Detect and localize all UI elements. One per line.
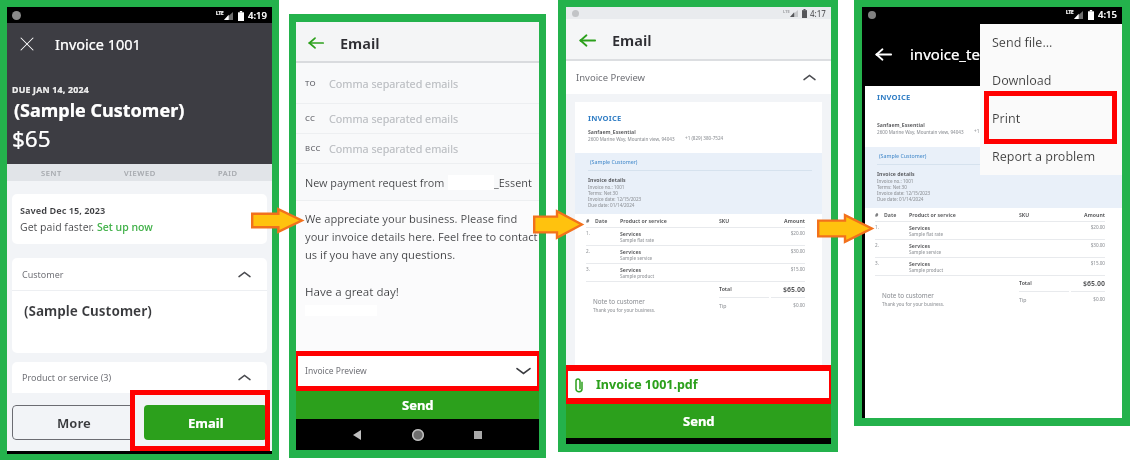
staticText: Total bbox=[1019, 279, 1071, 286]
staticText: 1. bbox=[875, 224, 884, 230]
staticText: Sanfaem_Essential bbox=[588, 128, 636, 135]
staticText: LTE bbox=[216, 10, 224, 16]
staticText: Invoice details bbox=[877, 170, 915, 177]
button[interactable]: More bbox=[12, 405, 135, 440]
staticText: We appreciate your business. Please find… bbox=[305, 211, 539, 263]
button[interactable]: SENT bbox=[7, 164, 96, 181]
staticText: Send bbox=[683, 412, 715, 430]
staticText: 4:17 bbox=[810, 8, 826, 19]
staticText: Send file... bbox=[992, 34, 1053, 51]
staticText: Due date: 01/14/2024 bbox=[588, 202, 635, 208]
staticText: Email bbox=[340, 33, 380, 53]
staticText: (Sample Customer) bbox=[590, 158, 638, 165]
staticText: Product or service bbox=[909, 211, 1019, 218]
staticText: New payment request from bbox=[305, 175, 448, 190]
staticText: Services bbox=[909, 224, 931, 231]
button[interactable]: Send file... bbox=[980, 24, 1122, 61]
staticText: CC bbox=[305, 113, 316, 124]
staticText: Download bbox=[992, 72, 1052, 89]
staticText: Note to customer bbox=[593, 297, 645, 306]
button[interactable]: Send bbox=[296, 391, 539, 419]
staticText: More bbox=[57, 414, 91, 432]
staticText: Have a great day! bbox=[305, 284, 399, 300]
button[interactable]: Invoice Preview bbox=[298, 356, 537, 386]
staticText: Services bbox=[620, 248, 642, 255]
button[interactable]: VIEWED bbox=[96, 164, 184, 181]
staticText: TO bbox=[305, 78, 316, 89]
staticText: PAID bbox=[218, 168, 238, 178]
button[interactable]: Customer bbox=[12, 258, 267, 290]
staticText: Invoice Preview bbox=[576, 71, 646, 84]
button[interactable]: Report a problem bbox=[980, 137, 1122, 175]
staticText: INVOICE bbox=[877, 92, 911, 102]
staticText: Comma separated emails bbox=[329, 76, 459, 91]
staticText: Print bbox=[992, 110, 1021, 127]
staticText: Invoice date: 12/15/2023 bbox=[877, 190, 931, 196]
staticText: Send bbox=[402, 396, 434, 414]
button[interactable]: Recents bbox=[467, 424, 489, 446]
staticText: INVOICE bbox=[588, 113, 622, 123]
staticText: (Sample Customer) bbox=[24, 302, 152, 320]
button[interactable]: Back bbox=[305, 32, 327, 54]
staticText: Comma separated emails bbox=[329, 141, 459, 156]
staticText: Due date: 01/14/2024 bbox=[877, 196, 924, 202]
staticText: Invoice details bbox=[588, 176, 626, 183]
staticText: Date bbox=[884, 211, 909, 218]
staticText: $0.00 bbox=[1071, 296, 1105, 302]
button[interactable]: Invoice 1001.pdf bbox=[568, 371, 829, 398]
staticText: _Essent bbox=[494, 175, 532, 190]
staticText: 4:19 bbox=[248, 9, 267, 22]
staticText: LTE bbox=[783, 9, 790, 14]
staticText: +1 (829) 380-7524 bbox=[685, 135, 724, 141]
button[interactable]: Invoice Preview bbox=[566, 61, 831, 94]
staticText: invoice_te bbox=[910, 44, 980, 64]
button[interactable]: Back bbox=[872, 43, 894, 65]
staticText: Thank you for your business. bbox=[882, 301, 945, 307]
button[interactable]: CC bbox=[296, 104, 539, 133]
staticText: $15.00 bbox=[1071, 260, 1105, 266]
staticText: 2. bbox=[875, 242, 884, 248]
staticText: Tip bbox=[719, 302, 727, 309]
staticText: Services bbox=[620, 266, 642, 273]
staticText: # bbox=[875, 211, 884, 218]
staticText: $20.00 bbox=[771, 230, 805, 236]
button[interactable]: Download bbox=[980, 61, 1122, 99]
staticText: Customer bbox=[22, 268, 64, 280]
staticText: 2. bbox=[586, 248, 595, 254]
staticText: SKU bbox=[1019, 211, 1071, 218]
staticText: DUE JAN 14, 2024 bbox=[12, 84, 89, 96]
staticText: Sample service bbox=[620, 255, 653, 261]
button[interactable]: Close bbox=[16, 33, 38, 55]
button[interactable]: PAID bbox=[184, 164, 272, 181]
staticText: VIEWED bbox=[124, 168, 156, 178]
staticText: $30.00 bbox=[771, 248, 805, 254]
staticText: Invoice Preview bbox=[305, 365, 367, 377]
staticText: SKU bbox=[719, 217, 771, 224]
staticText: Terms: Net 30 bbox=[588, 190, 618, 196]
button[interactable]: Back bbox=[576, 29, 598, 51]
staticText: Amount bbox=[1071, 211, 1105, 218]
button[interactable]: New payment request from bbox=[296, 164, 539, 200]
staticText: Total bbox=[719, 285, 771, 292]
button[interactable]: BCC bbox=[296, 134, 539, 163]
staticText: (Sample Customer) bbox=[14, 98, 185, 123]
staticText: Sample product bbox=[909, 267, 944, 273]
staticText: Comma separated emails bbox=[329, 111, 459, 126]
button[interactable]: Home bbox=[407, 424, 429, 446]
staticText: 2600 Marine Way, Mountain view, 94043 bbox=[877, 129, 964, 135]
staticText: Invoice no.: 1001 bbox=[877, 178, 914, 184]
staticText: +1 (829) 380-7524 bbox=[974, 128, 1013, 134]
button[interactable]: Product or service (3) bbox=[12, 362, 267, 392]
button[interactable]: Saved Dec 15, 2023 bbox=[12, 194, 267, 244]
button[interactable]: Email bbox=[144, 405, 267, 440]
staticText: LTE bbox=[1066, 9, 1074, 15]
staticText: Sample product bbox=[620, 273, 655, 279]
staticText: $20.00 bbox=[1071, 224, 1105, 230]
staticText: Thank you for your business. bbox=[593, 307, 656, 313]
button[interactable]: Print bbox=[980, 99, 1122, 137]
button[interactable]: Back bbox=[346, 424, 368, 446]
button[interactable]: TO bbox=[296, 63, 539, 103]
button[interactable]: Send bbox=[566, 404, 831, 438]
staticText: SENT bbox=[41, 168, 62, 178]
staticText: Services bbox=[909, 242, 931, 249]
